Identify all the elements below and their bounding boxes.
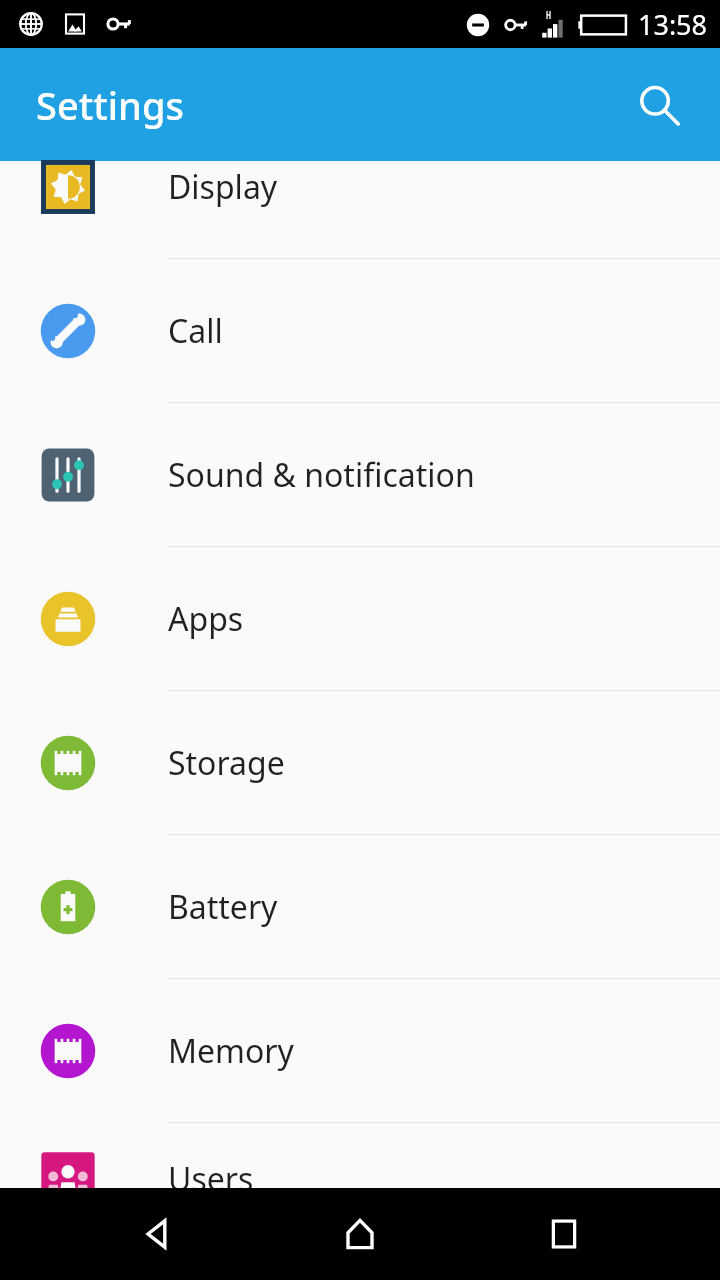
button[interactable]: Memory <box>0 979 720 1123</box>
staticText: Memory <box>168 1029 294 1073</box>
staticText: Settings <box>36 79 184 131</box>
staticText: Sound & notification <box>168 453 475 497</box>
staticText: Battery <box>168 885 278 929</box>
button[interactable]: Recent apps <box>516 1188 612 1280</box>
staticText: 13:58 <box>638 6 708 43</box>
button[interactable]: Display <box>0 115 720 259</box>
button[interactable]: Users <box>0 1123 720 1234</box>
staticText: Users <box>168 1157 254 1201</box>
staticText: Apps <box>168 597 244 641</box>
button[interactable]: Call <box>0 259 720 403</box>
button[interactable]: Apps <box>0 547 720 691</box>
staticText: Storage <box>168 741 285 785</box>
button[interactable]: Battery <box>0 835 720 979</box>
button[interactable]: Sound & notification <box>0 403 720 547</box>
staticText: Display <box>168 165 278 209</box>
button[interactable]: Back <box>108 1188 204 1280</box>
staticText: Call <box>168 309 223 353</box>
button[interactable]: Home <box>312 1188 408 1280</box>
button[interactable]: Storage <box>0 691 720 835</box>
button[interactable]: Search <box>622 69 694 141</box>
